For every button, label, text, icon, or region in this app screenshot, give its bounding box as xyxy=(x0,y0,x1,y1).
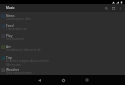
button[interactable]: News xyxy=(0,12,125,22)
button[interactable]: Weather xyxy=(0,66,125,75)
staticText: Minim veni xyxy=(6,63,21,66)
button[interactable]: Home xyxy=(51,75,75,85)
button[interactable]: Recent apps xyxy=(75,75,99,85)
button[interactable]: Cast xyxy=(110,5,116,11)
staticText: Et dolore magna aliqua ut enim xyxy=(6,59,49,63)
button[interactable]: Back xyxy=(27,75,51,85)
staticText: Art xyxy=(6,44,11,48)
button[interactable]: Art xyxy=(0,43,125,54)
staticText: Incididunt ut labore et do xyxy=(6,48,41,52)
staticText: Feed xyxy=(6,23,14,27)
button[interactable]: More options xyxy=(117,5,123,11)
staticText: News xyxy=(6,13,15,17)
staticText: Consectetur ad xyxy=(6,27,27,31)
staticText: Weather xyxy=(6,67,20,71)
button[interactable]: Trip xyxy=(0,54,125,66)
button[interactable]: Search xyxy=(103,5,109,11)
staticText: Music xyxy=(6,6,15,10)
staticText: Trip xyxy=(6,55,12,59)
staticText: Lorem ipsum dolo xyxy=(6,17,31,21)
button[interactable]: Play xyxy=(0,32,125,43)
staticText: Quis nostrud exerci xyxy=(6,71,33,75)
button[interactable]: Feed xyxy=(0,22,125,32)
staticText: Sed eiusmod xyxy=(6,37,24,41)
staticText: Play xyxy=(6,33,13,37)
